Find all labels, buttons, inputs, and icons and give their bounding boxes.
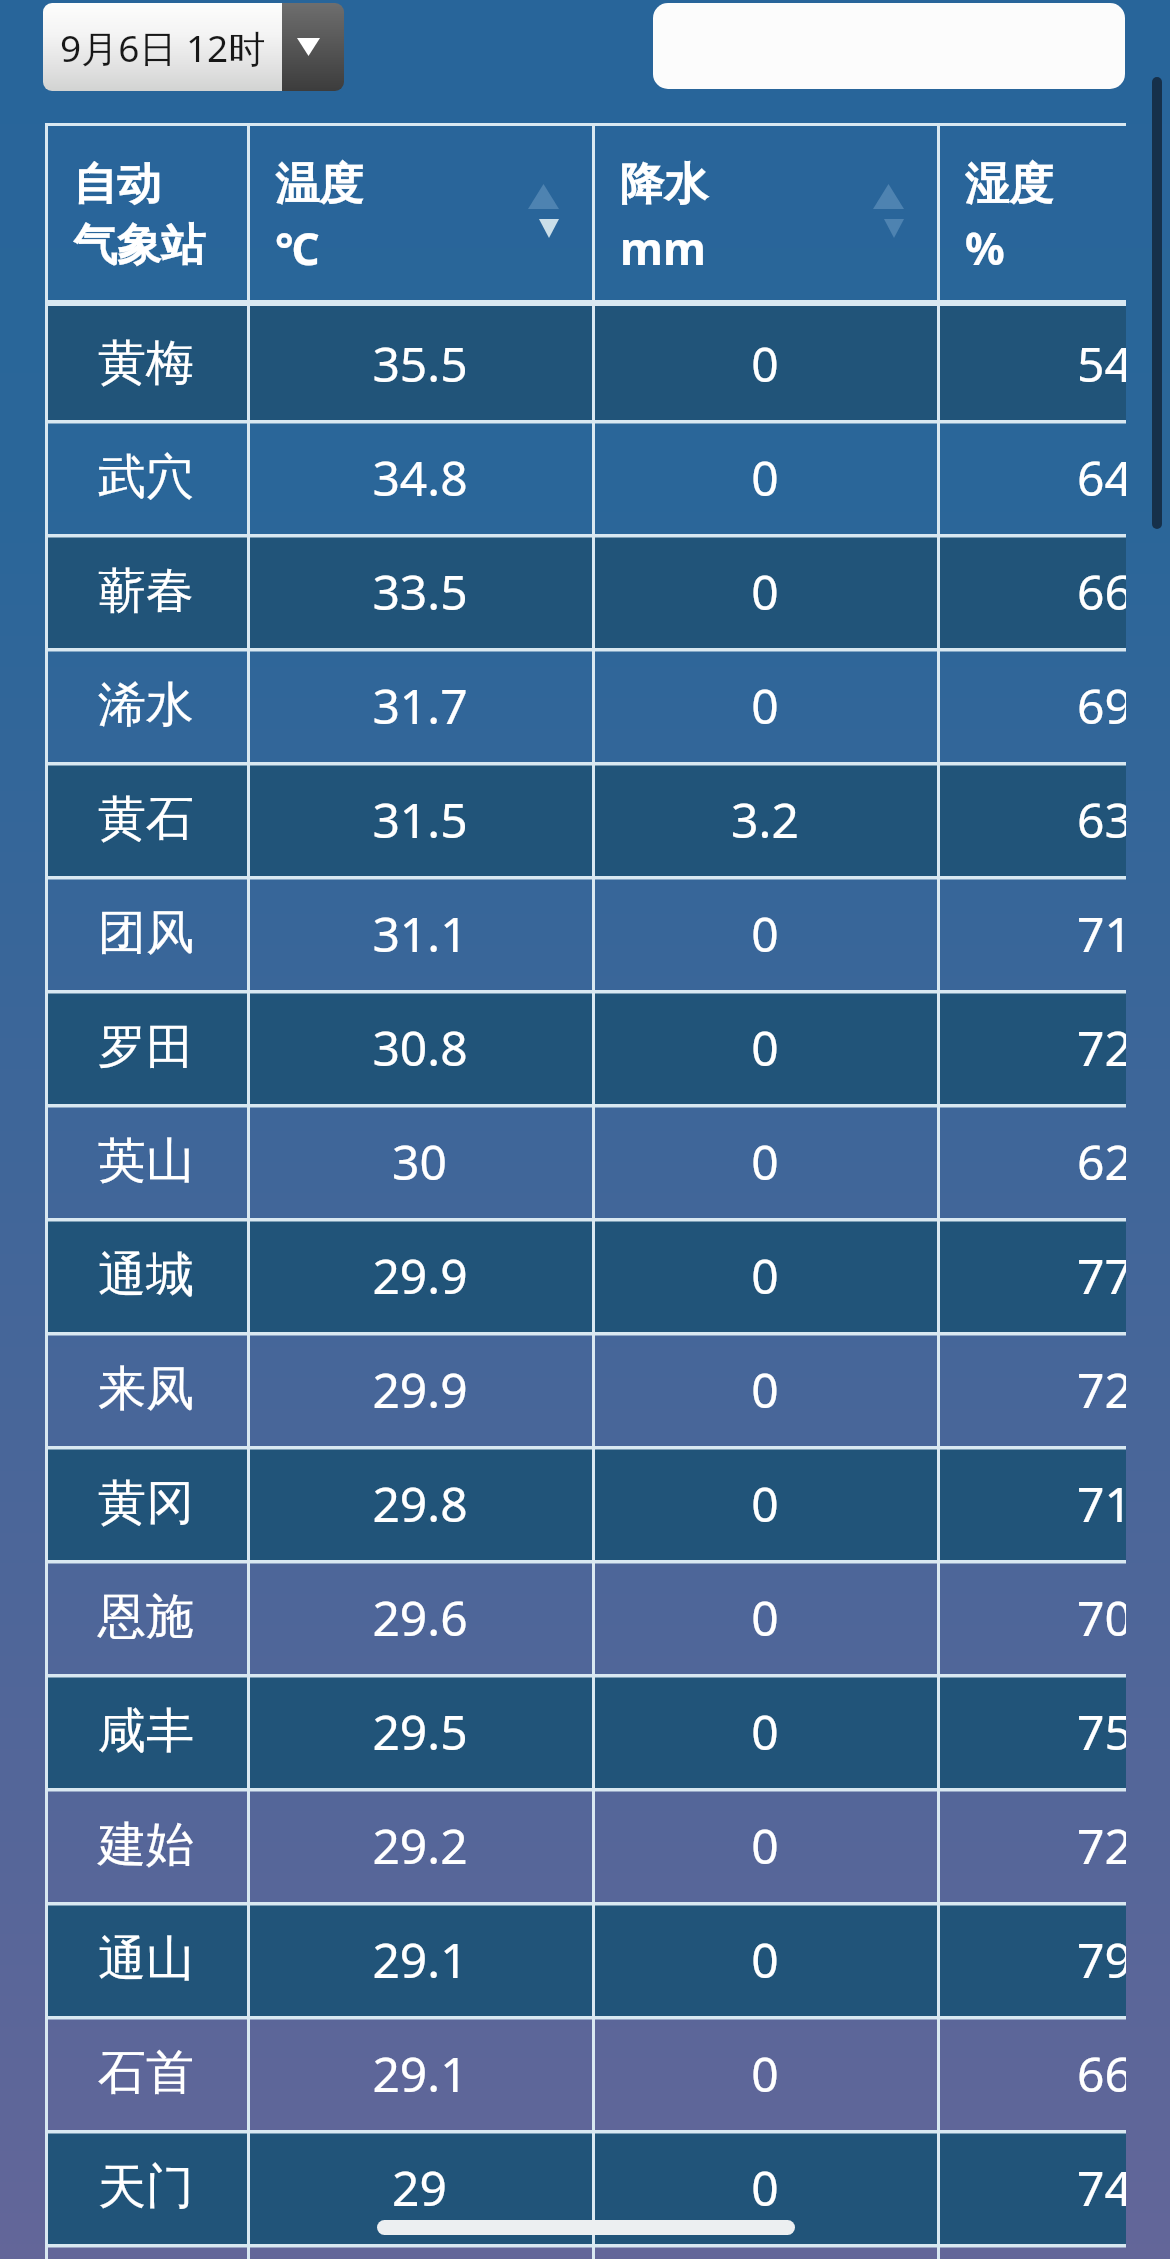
staticText: 72 bbox=[1077, 1015, 1126, 1080]
staticText: 29.8 bbox=[372, 1471, 468, 1536]
button[interactable]: Sort by 降水 bbox=[873, 184, 904, 240]
button[interactable]: 天门 bbox=[45, 2130, 1126, 2244]
staticText: 温度 bbox=[275, 157, 363, 212]
button[interactable]: 黄石 bbox=[45, 762, 1126, 876]
staticText: 浠水 bbox=[98, 675, 194, 735]
staticText: 咸丰 bbox=[98, 1701, 194, 1761]
staticText: 66 bbox=[1077, 2041, 1126, 2106]
staticText: 79 bbox=[1077, 1927, 1126, 1992]
staticText: 通城 bbox=[98, 1245, 194, 1305]
staticText: 0 bbox=[751, 445, 779, 510]
staticText: 31.5 bbox=[372, 787, 468, 852]
button[interactable]: Search stations bbox=[653, 3, 1125, 89]
staticText: 31.7 bbox=[372, 673, 468, 738]
button[interactable]: 湿度 bbox=[937, 123, 1126, 306]
staticText: 0 bbox=[751, 1813, 779, 1878]
staticText: 29.5 bbox=[372, 1699, 468, 1764]
staticText: 75 bbox=[1077, 1699, 1126, 1764]
button[interactable]: 来凤 bbox=[45, 1332, 1126, 1446]
staticText: 恩施 bbox=[98, 1587, 194, 1647]
staticText: 黄梅 bbox=[98, 333, 194, 393]
button[interactable]: 黄冈 bbox=[45, 1446, 1126, 1560]
staticText: 74 bbox=[1077, 2155, 1126, 2220]
staticText: 湿度 bbox=[965, 157, 1053, 212]
staticText: 黄石 bbox=[98, 789, 194, 849]
button[interactable]: 黄梅 bbox=[45, 306, 1126, 420]
staticText: 29.9 bbox=[372, 1357, 468, 1422]
staticText: 77 bbox=[1077, 1243, 1126, 1308]
staticText: 0 bbox=[751, 559, 779, 624]
button[interactable]: 建始 bbox=[45, 1788, 1126, 1902]
button[interactable]: 通城 bbox=[45, 1218, 1126, 1332]
staticText: 29.6 bbox=[372, 1585, 468, 1650]
staticText: 0 bbox=[751, 673, 779, 738]
other: Open date selector bbox=[282, 3, 344, 91]
staticText: 石首 bbox=[98, 2043, 194, 2103]
staticText: 0 bbox=[751, 2041, 779, 2106]
button[interactable]: 石首 bbox=[45, 2016, 1126, 2130]
staticText: % bbox=[965, 218, 1005, 278]
staticText: 35.5 bbox=[372, 331, 468, 396]
staticText: 29.9 bbox=[372, 1243, 468, 1308]
staticText: ℃ bbox=[275, 218, 320, 278]
staticText: 72 bbox=[1077, 1813, 1126, 1878]
staticText: 62 bbox=[1077, 1129, 1126, 1194]
staticText: 黄冈 bbox=[98, 1473, 194, 1533]
staticText: 71 bbox=[1077, 1471, 1126, 1536]
staticText: 34.8 bbox=[372, 445, 468, 510]
staticText: 30.8 bbox=[372, 1015, 468, 1080]
staticText: 29.1 bbox=[372, 2041, 468, 2106]
staticText: 来凤 bbox=[98, 1359, 194, 1419]
staticText: 通山 bbox=[98, 1929, 194, 1989]
staticText: 0 bbox=[751, 1699, 779, 1764]
staticText: 罗田 bbox=[98, 1017, 194, 1077]
button[interactable]: 自动 bbox=[45, 123, 247, 306]
staticText: 30 bbox=[392, 1129, 447, 1194]
staticText: 69 bbox=[1077, 673, 1126, 738]
staticText: 英山 bbox=[98, 1131, 194, 1191]
staticText: 0 bbox=[751, 1927, 779, 1992]
staticText: 29 bbox=[392, 2155, 447, 2220]
staticText: 71 bbox=[1077, 901, 1126, 966]
staticText: 3.2 bbox=[731, 787, 799, 852]
staticText: 0 bbox=[751, 1243, 779, 1308]
staticText: 0 bbox=[751, 901, 779, 966]
staticText: 0 bbox=[751, 1357, 779, 1422]
staticText: 29.2 bbox=[372, 1813, 468, 1878]
button[interactable]: 通山 bbox=[45, 1902, 1126, 2016]
staticText: 66 bbox=[1077, 559, 1126, 624]
button[interactable]: 降水 bbox=[592, 123, 937, 306]
staticText: 70 bbox=[1077, 1585, 1126, 1650]
staticText: 0 bbox=[751, 1015, 779, 1080]
button[interactable]: 咸丰 bbox=[45, 1674, 1126, 1788]
button[interactable]: 团风 bbox=[45, 876, 1126, 990]
staticText: 0 bbox=[751, 1585, 779, 1650]
button[interactable]: 仙桃 bbox=[45, 2244, 1126, 2259]
staticText: 0 bbox=[751, 331, 779, 396]
staticText: 0 bbox=[751, 2155, 779, 2220]
staticText: 蕲春 bbox=[98, 561, 194, 621]
staticText: 武穴 bbox=[98, 447, 194, 507]
button[interactable]: 恩施 bbox=[45, 1560, 1126, 1674]
staticText: 团风 bbox=[98, 903, 194, 963]
staticText: 气象站 bbox=[73, 218, 205, 273]
staticText: 31.1 bbox=[372, 901, 468, 966]
staticText: 54 bbox=[1077, 331, 1126, 396]
staticText: 自动 bbox=[73, 157, 161, 212]
button[interactable]: 蕲春 bbox=[45, 534, 1126, 648]
staticText: 63 bbox=[1077, 787, 1126, 852]
button[interactable]: 浠水 bbox=[45, 648, 1126, 762]
button[interactable]: 9月6日 12时 bbox=[43, 3, 344, 91]
staticText: 9月6日 12时 bbox=[60, 22, 266, 73]
button[interactable]: Sort by 温度 bbox=[528, 184, 559, 240]
button[interactable]: 英山 bbox=[45, 1104, 1126, 1218]
button[interactable]: 温度 bbox=[247, 123, 592, 306]
staticText: 0 bbox=[751, 1129, 779, 1194]
button[interactable]: 武穴 bbox=[45, 420, 1126, 534]
staticText: 天门 bbox=[98, 2157, 194, 2217]
staticText: 33.5 bbox=[372, 559, 468, 624]
staticText: 降水 bbox=[620, 157, 708, 212]
staticText: 0 bbox=[751, 1471, 779, 1536]
staticText: 建始 bbox=[98, 1815, 194, 1875]
button[interactable]: 罗田 bbox=[45, 990, 1126, 1104]
